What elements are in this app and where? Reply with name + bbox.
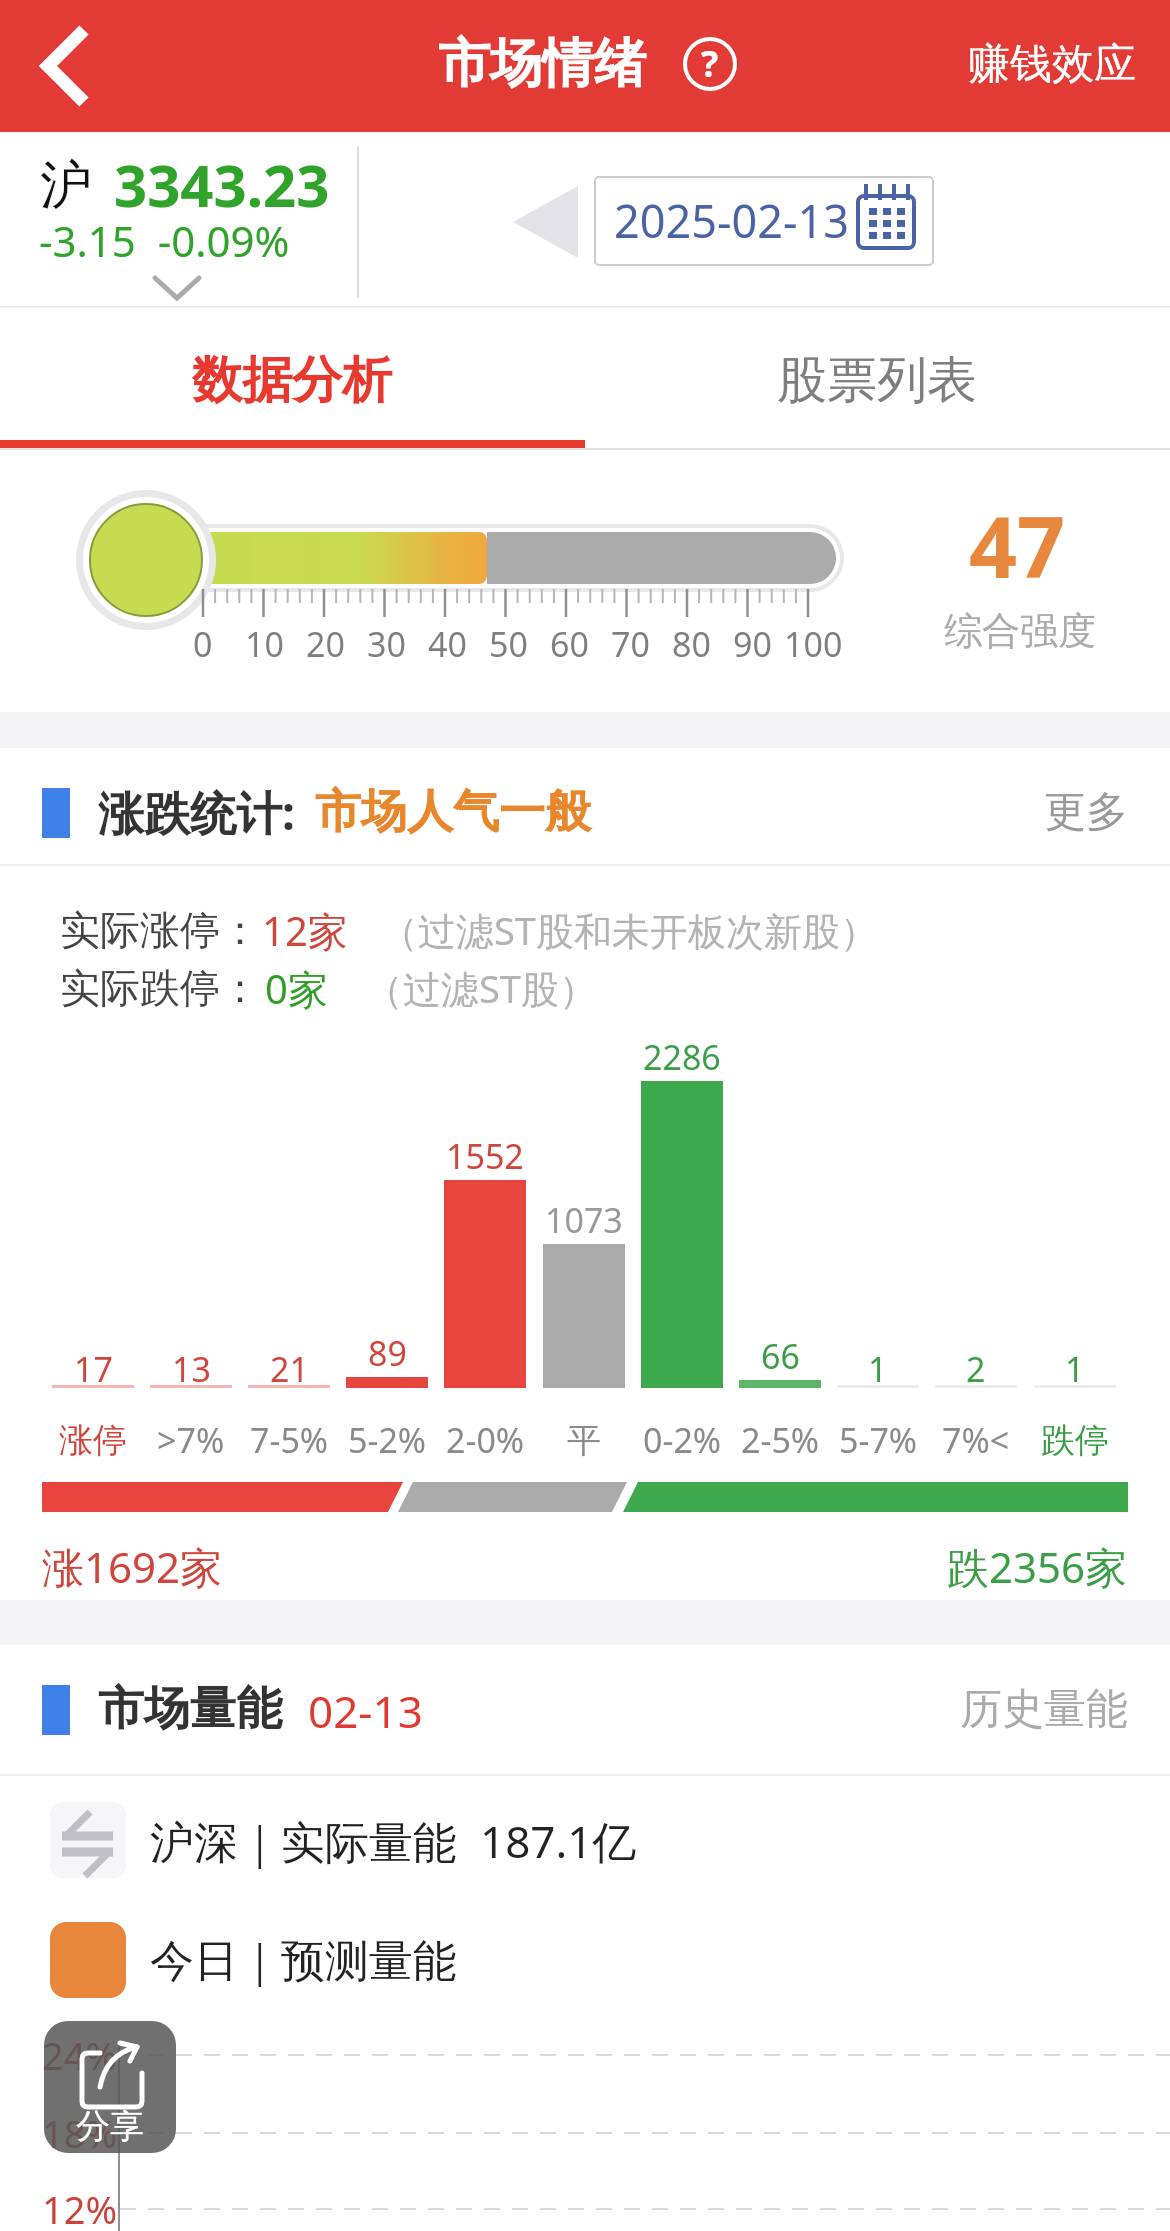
- staticText: 涨跌统计:: [98, 781, 295, 844]
- staticText: 7-5%: [250, 1417, 329, 1463]
- staticText: 70: [611, 621, 650, 667]
- staticText: 50: [489, 621, 528, 667]
- staticText: 综合强度: [944, 607, 1096, 655]
- staticText: 市场情绪: [438, 31, 646, 97]
- staticText: 1552: [446, 1133, 524, 1179]
- staticText: 5-7%: [839, 1417, 918, 1463]
- staticText: 股票列表: [777, 349, 977, 412]
- staticText: 沪: [40, 153, 92, 219]
- staticText: >7%: [157, 1417, 225, 1463]
- staticText: 60: [550, 621, 589, 667]
- staticText: ?: [701, 39, 719, 88]
- staticText: 12家: [262, 903, 348, 958]
- staticText: -3.15 -0.09%: [39, 212, 290, 269]
- staticText: 1073: [545, 1197, 623, 1243]
- staticText: 12%: [42, 2183, 118, 2231]
- staticText: 市场人气一般: [315, 783, 591, 841]
- staticText: 90: [733, 621, 772, 667]
- staticText: 0家: [265, 961, 328, 1016]
- staticText: 实际涨停：: [60, 905, 260, 955]
- button[interactable]: [20, 16, 120, 116]
- staticText: 2: [966, 1346, 986, 1392]
- staticText: 3343.23: [114, 145, 330, 224]
- button[interactable]: [0, 310, 585, 448]
- staticText: 80: [672, 621, 711, 667]
- staticText: 跌停: [1041, 1419, 1109, 1462]
- staticText: 跌2356家: [947, 1538, 1128, 1595]
- button[interactable]: [585, 310, 1170, 448]
- staticText: 5-2%: [348, 1417, 427, 1463]
- staticText: 20: [306, 621, 345, 667]
- button[interactable]: [44, 2021, 176, 2153]
- staticText: （过滤ST股）: [365, 962, 597, 1014]
- staticText: 赚钱效应: [968, 38, 1136, 91]
- staticText: 2-0%: [446, 1417, 525, 1463]
- staticText: 66: [761, 1333, 800, 1379]
- staticText: 0-2%: [643, 1417, 722, 1463]
- staticText: 1: [868, 1346, 888, 1392]
- staticText: （过滤ST股和未开板次新股）: [380, 904, 878, 956]
- staticText: 17: [74, 1346, 113, 1392]
- button[interactable]: [682, 36, 738, 92]
- staticText: 0: [193, 621, 213, 667]
- staticText: 24%: [42, 2029, 118, 2081]
- staticText: 更多: [1044, 786, 1128, 839]
- staticText: 平: [567, 1419, 601, 1462]
- button[interactable]: 赚钱效应: [0, 0, 600, 120]
- staticText: 21: [270, 1346, 309, 1392]
- staticText: 18%: [42, 2107, 118, 2159]
- staticText: 02-13: [308, 1681, 423, 1741]
- staticText: 1: [1065, 1346, 1085, 1392]
- staticText: 实际跌停：: [60, 963, 260, 1013]
- staticText: 分享: [76, 2105, 144, 2148]
- staticText: 涨1692家: [42, 1538, 223, 1595]
- staticText: 100: [784, 621, 843, 667]
- staticText: 40: [428, 621, 467, 667]
- staticText: 历史量能: [960, 1683, 1128, 1736]
- staticText: 涨停: [59, 1419, 127, 1462]
- staticText: 89: [368, 1330, 407, 1376]
- staticText: 7%<: [942, 1417, 1010, 1463]
- button[interactable]: 历史量能: [0, 0, 600, 120]
- staticText: 市场量能: [98, 1680, 282, 1738]
- staticText: 47: [969, 488, 1066, 602]
- staticText: 2286: [643, 1034, 721, 1080]
- staticText: 沪深｜实际量能 187.1亿: [150, 1811, 637, 1871]
- staticText: 13: [172, 1346, 211, 1392]
- staticText: 30: [367, 621, 406, 667]
- staticText: 10: [245, 621, 284, 667]
- button[interactable]: [595, 177, 933, 265]
- button[interactable]: 更多: [0, 0, 600, 120]
- staticText: 2-5%: [741, 1417, 820, 1463]
- staticText: 今日｜预测量能: [150, 1934, 458, 1989]
- staticText: 2025-02-13: [614, 190, 849, 251]
- staticText: 数据分析: [192, 349, 392, 412]
